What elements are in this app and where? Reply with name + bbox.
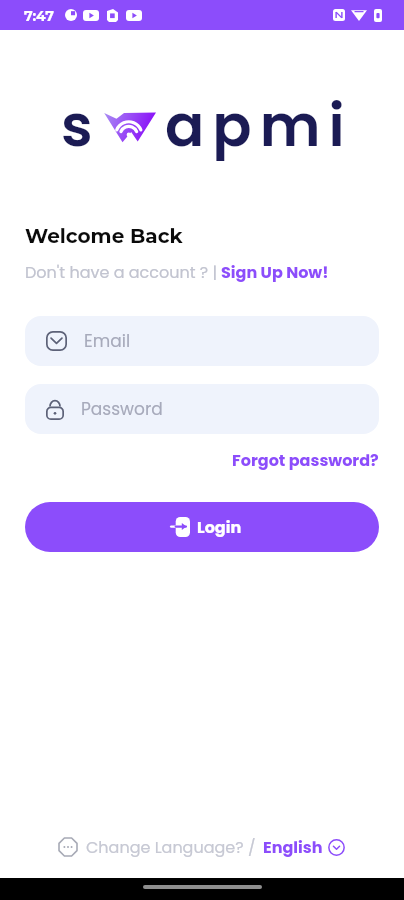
- button[interactable]: Sign Up Now!: [221, 261, 329, 283]
- staticText: Login: [197, 516, 242, 538]
- button[interactable]: Login: [25, 502, 379, 552]
- staticText: Email: [84, 329, 131, 353]
- staticText: Forgot password?: [232, 449, 379, 471]
- staticText: 7:47: [24, 7, 54, 24]
- button[interactable]: Password: [25, 384, 379, 434]
- staticText: Change Language? /: [86, 836, 256, 858]
- staticText: s: [61, 85, 93, 166]
- staticText: apmi: [165, 85, 353, 166]
- button[interactable]: Email: [25, 316, 379, 366]
- button[interactable]: Change Language? /: [59, 836, 345, 858]
- staticText: English: [263, 836, 323, 858]
- staticText: Sign Up Now!: [221, 261, 329, 283]
- staticText: Password: [81, 397, 163, 421]
- staticText: Don't have a account ? |: [25, 261, 218, 283]
- staticText: Welcome Back: [25, 224, 183, 248]
- button[interactable]: Forgot password?: [232, 449, 379, 471]
